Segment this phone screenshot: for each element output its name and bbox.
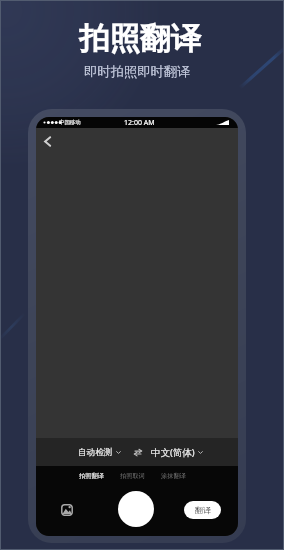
button[interactable]: 中文(简体) [150, 443, 204, 462]
staticText: 拍照翻译 [79, 20, 201, 58]
button[interactable]: 自动检测 [77, 444, 122, 461]
button[interactable]: 翻译 [184, 501, 221, 519]
staticText: 涂抹翻译 [161, 472, 186, 480]
staticText: 中国移动 [59, 119, 81, 126]
button[interactable]: Gallery [55, 498, 79, 522]
button[interactable]: 拍照翻译 [77, 469, 106, 483]
button[interactable]: Back [36, 130, 58, 152]
staticText: 中文(简体) [151, 446, 195, 459]
button[interactable]: 涂抹翻译 [159, 469, 188, 483]
staticText: 翻译 [195, 505, 211, 515]
staticText: 12:00 AM [124, 118, 155, 128]
staticText: 拍照翻译 [79, 472, 104, 480]
button[interactable]: Take photo [118, 491, 154, 527]
staticText: 即时拍照即时翻译 [84, 63, 191, 80]
staticText: 自动检测 [78, 447, 113, 458]
button[interactable]: 拍照取词 [118, 469, 147, 483]
button[interactable]: Swap languages [132, 446, 144, 458]
staticText: 拍照取词 [120, 472, 145, 480]
